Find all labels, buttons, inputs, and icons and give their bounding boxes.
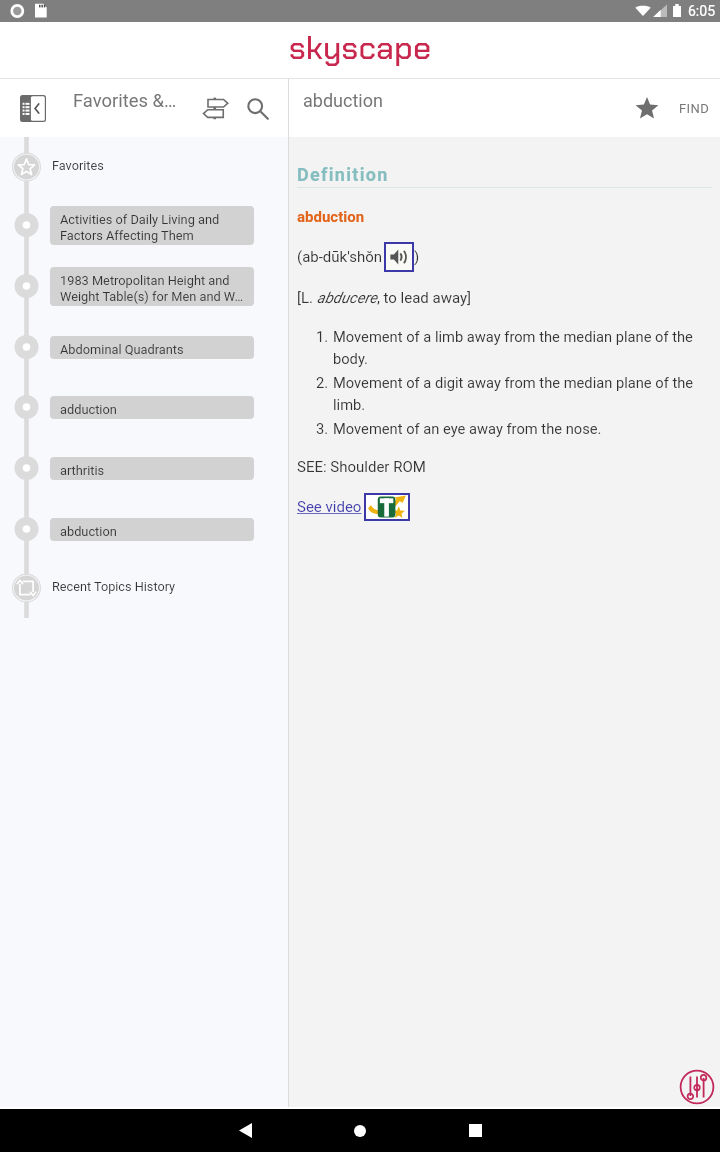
button[interactable]: FIND [670,93,719,124]
button[interactable]: Favorites &… [73,90,177,112]
button[interactable]: See video [366,495,408,519]
staticText: adduction [60,402,117,417]
button[interactable]: Back [217,1109,273,1152]
staticText: 3. [316,420,329,437]
staticText: Movement of a digit away from the median… [333,374,694,391]
staticText: Movement of a limb away from the median … [333,328,693,345]
staticText: abduction [60,524,117,539]
button[interactable]: Display settings [679,1069,715,1105]
staticText: [L. abducere, to lead away] [297,289,472,307]
staticText: skyscape [289,27,432,69]
staticText: limb. [333,396,366,413]
button[interactable]: arthritis [50,457,254,480]
staticText: Favorites [52,158,104,173]
staticText: Activities of Daily Living and [60,212,220,227]
button[interactable]: Home [332,1109,388,1152]
button[interactable]: Collapse panel [10,87,55,129]
button[interactable]: Abdominal Quadrants [50,336,254,359]
button[interactable]: Add to favorites [625,87,668,129]
button[interactable]: See video [297,498,362,516]
staticText: 6:05 [688,3,715,19]
button[interactable]: Navigate [194,90,236,128]
staticText: arthritis [60,463,105,478]
staticText: body. [333,350,368,367]
button[interactable]: abduction [50,518,254,541]
staticText: FIND [679,101,710,116]
button[interactable]: Favorites [52,158,104,173]
button[interactable]: Recent apps [447,1109,503,1152]
button[interactable]: adduction [50,396,254,419]
staticText: ) [414,248,420,266]
staticText: Movement of an eye away from the nose. [333,420,602,437]
staticText: SEE: Shoulder ROM [297,458,426,476]
staticText: abduction [303,90,383,111]
staticText: Weight Table(s) for Men and W… [60,289,244,304]
staticText: See video [297,498,362,516]
staticText: Abdominal Quadrants [60,342,184,357]
staticText: 1983 Metropolitan Height and [60,273,230,288]
button[interactable]: 1983 Metropolitan Height and [50,267,254,306]
staticText: 2. [316,374,329,391]
button[interactable]: Recent Topics History [52,579,176,594]
staticText: abduction [297,208,365,226]
button[interactable]: Pronounce [386,244,412,270]
button[interactable]: Search [237,89,277,127]
staticText: (ab-dūk'shŏn [297,248,383,266]
staticText: Definition [297,164,389,185]
staticText: 1. [316,328,329,345]
button[interactable]: Activities of Daily Living and [50,206,254,245]
staticText: Factors Affecting Them [60,228,194,243]
button[interactable]: abduction [303,90,383,111]
staticText: Recent Topics History [52,579,176,594]
staticText: Favorites &… [73,90,177,112]
